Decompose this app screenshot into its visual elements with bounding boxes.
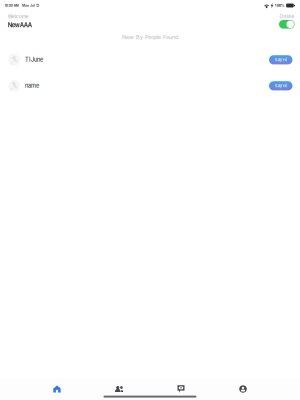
button[interactable]: People <box>88 383 150 395</box>
staticText: Online <box>279 14 294 19</box>
button[interactable]: Say Hi <box>269 81 292 90</box>
staticText: 10:00 AM <box>5 4 19 7</box>
staticText: Say Hi <box>275 83 287 88</box>
button[interactable]: Home <box>26 383 88 395</box>
button[interactable]: Account <box>212 383 274 395</box>
staticText: Mon Jul 13 <box>22 4 39 7</box>
button[interactable]: Say Hi <box>269 55 292 64</box>
staticText: Near By People Found <box>122 34 178 40</box>
button[interactable]: Messages <box>150 383 212 395</box>
staticText: Welcome <box>8 14 29 19</box>
staticText: Say Hi <box>275 57 287 62</box>
staticText: NewAAA <box>8 22 32 29</box>
staticText: 100% <box>275 3 285 8</box>
staticText: name <box>25 82 39 89</box>
staticText: TIJune <box>25 56 43 63</box>
